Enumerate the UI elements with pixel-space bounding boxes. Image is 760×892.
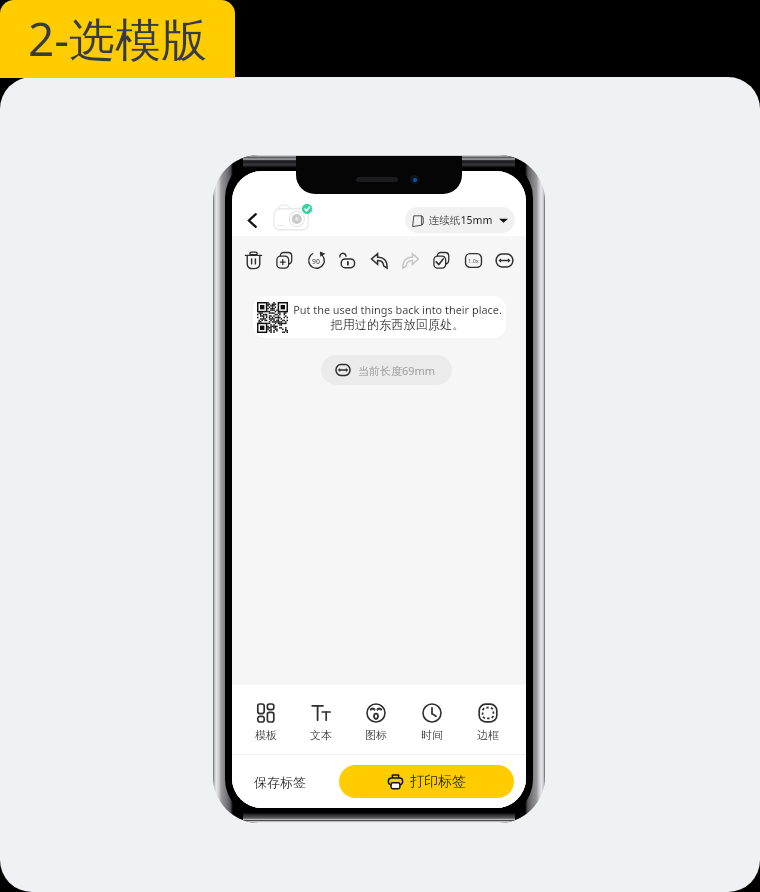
- staticText: Put the used things back into their plac…: [293, 302, 502, 317]
- button[interactable]: Select all: [427, 246, 456, 275]
- staticText: 把用过的东西放回原处。: [330, 317, 465, 332]
- staticText: 90: [312, 257, 321, 267]
- button[interactable]: 模板: [238, 691, 293, 748]
- staticText: 连续纸15mm: [429, 213, 493, 227]
- button[interactable]: 当前长度69mm: [321, 355, 452, 385]
- button[interactable]: Undo: [365, 246, 394, 275]
- staticText: 图标: [365, 728, 387, 742]
- staticText: 边框: [477, 728, 499, 742]
- staticText: 打印标签: [410, 773, 466, 791]
- button[interactable]: Copy: [270, 246, 299, 275]
- button[interactable]: Width: [490, 246, 519, 275]
- button[interactable]: Unlock: [333, 246, 362, 275]
- staticText: 当前长度69mm: [358, 363, 436, 378]
- button[interactable]: Put the used things back into their plac…: [253, 296, 506, 338]
- button[interactable]: Printer connected: [272, 205, 313, 235]
- staticText: 1.0x: [468, 257, 479, 264]
- staticText: 2-选模版: [28, 7, 208, 70]
- button[interactable]: 图标: [348, 691, 404, 748]
- staticText: 文本: [310, 728, 332, 742]
- button[interactable]: 边框: [460, 691, 516, 748]
- staticText: 时间: [421, 728, 443, 742]
- staticText: 保存标签: [254, 774, 306, 790]
- button[interactable]: Delete: [239, 246, 268, 275]
- button[interactable]: 打印标签: [339, 765, 514, 798]
- button[interactable]: 时间: [404, 691, 460, 748]
- button[interactable]: 保存标签: [250, 766, 310, 798]
- button[interactable]: 连续纸15mm: [405, 207, 515, 233]
- button[interactable]: Back: [239, 207, 265, 233]
- button[interactable]: Scale: [459, 246, 488, 275]
- button[interactable]: Redo: [396, 246, 425, 275]
- staticText: 模板: [255, 728, 277, 742]
- button[interactable]: Rotate 90 degrees: [302, 246, 331, 275]
- button[interactable]: 文本: [293, 691, 348, 748]
